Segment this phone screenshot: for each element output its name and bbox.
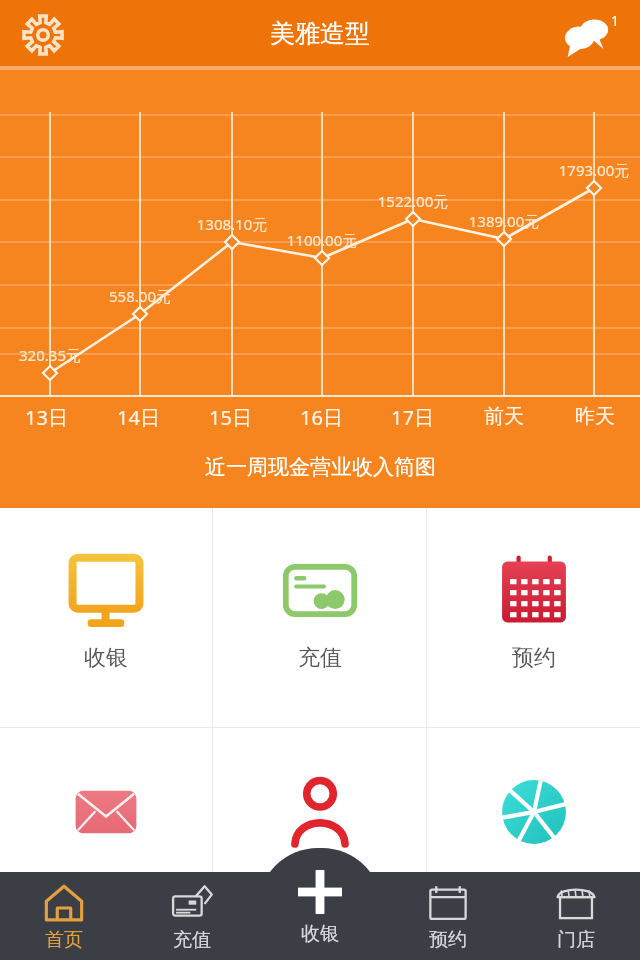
staticText: 17日: [391, 404, 434, 431]
staticText: 13日: [25, 404, 68, 431]
staticText: 1389.00元: [444, 211, 564, 231]
staticText: 预约: [512, 644, 556, 672]
staticText: 门店: [557, 928, 595, 952]
staticText: 320.35元: [0, 345, 110, 365]
button[interactable]: Action: [213, 728, 426, 960]
staticText: 1308.10元: [172, 214, 292, 234]
staticText: 近一周现金营业收入简图: [205, 454, 436, 480]
button[interactable]: Settings: [16, 8, 70, 62]
staticText: 美雅造型: [270, 18, 370, 49]
staticText: 1100.00元: [262, 230, 382, 250]
staticText: 前天: [484, 404, 524, 429]
button[interactable]: 门店: [512, 872, 640, 960]
staticText: 充值: [173, 928, 211, 952]
staticText: 14日: [117, 404, 160, 431]
staticText: 收银: [84, 644, 128, 672]
button[interactable]: 预约: [384, 872, 512, 960]
staticText: 1793.00元: [534, 160, 640, 180]
button[interactable]: Action: [427, 728, 640, 960]
staticText: 预约: [429, 928, 467, 952]
staticText: 558.00元: [80, 286, 200, 306]
button[interactable]: 收银 Add: [258, 848, 382, 960]
button[interactable]: 首页: [0, 872, 128, 960]
staticText: 收银: [301, 922, 339, 946]
button[interactable]: 充值: [128, 872, 256, 960]
button[interactable]: 充值: [213, 508, 426, 727]
button[interactable]: Messages: [560, 9, 626, 61]
staticText: 1522.00元: [353, 191, 473, 211]
staticText: 16日: [300, 404, 343, 431]
button[interactable]: 收银: [0, 508, 212, 727]
button[interactable]: 预约: [427, 508, 640, 727]
staticText: 首页: [45, 928, 83, 952]
staticText: 15日: [209, 404, 252, 431]
staticText: 昨天: [575, 404, 615, 429]
button[interactable]: Action: [0, 728, 212, 960]
staticText: 充值: [298, 644, 342, 672]
staticText: 1: [611, 11, 620, 30]
